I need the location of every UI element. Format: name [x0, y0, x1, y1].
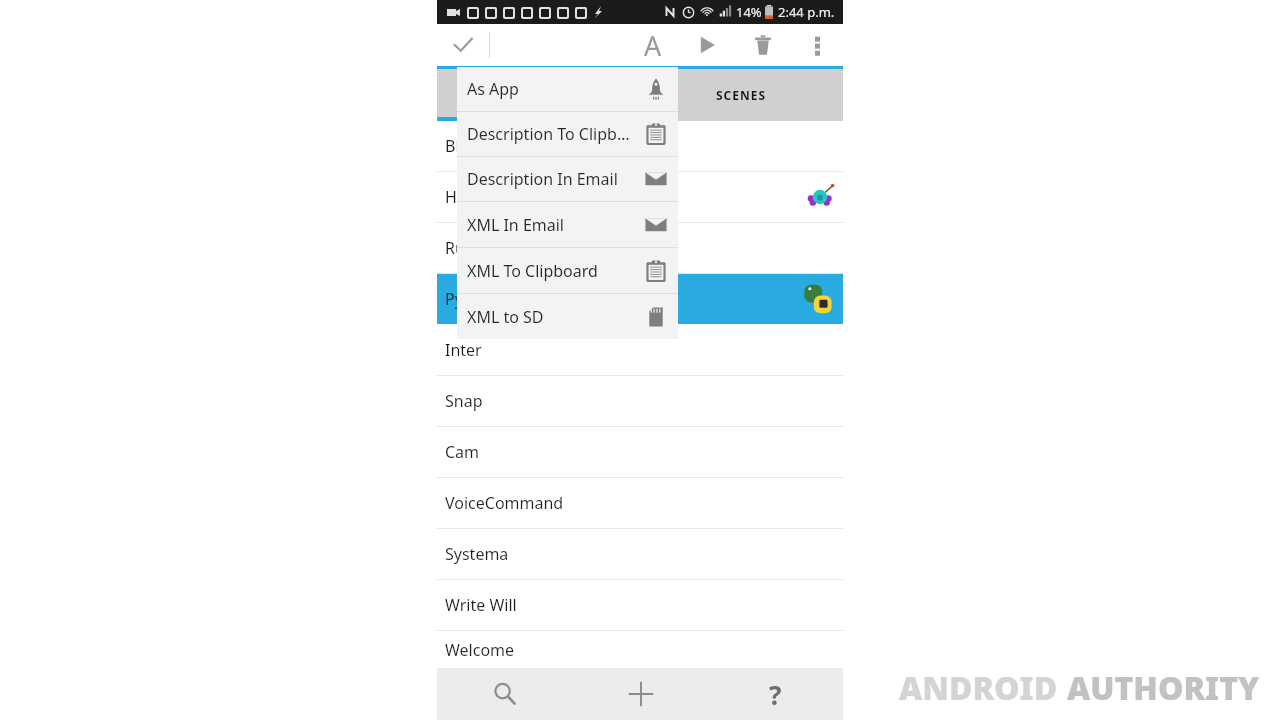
button[interactable]: Home — [437, 172, 843, 222]
staticText: Write Will — [445, 594, 517, 616]
button[interactable]: Bluetooth — [437, 121, 843, 171]
button[interactable]: Add — [573, 668, 708, 720]
button[interactable]: Description In Email — [457, 157, 678, 201]
staticText: ANDROID — [899, 666, 1058, 710]
button[interactable]: SCENES — [640, 69, 843, 121]
button[interactable]: Python — [437, 274, 843, 324]
button[interactable]: XML In Email — [457, 202, 678, 247]
staticText: Cam — [445, 441, 480, 463]
staticText: XML In Email — [467, 214, 638, 236]
button[interactable]: XML To Clipboard — [457, 248, 678, 293]
staticText: Bluetooth — [445, 135, 520, 157]
staticText: Description To Clipb… — [467, 123, 638, 145]
staticText: 14% — [736, 3, 762, 21]
button[interactable]: VoiceCommand — [437, 478, 843, 528]
staticText: A — [644, 27, 662, 64]
staticText: AUTHORITY — [1067, 666, 1260, 710]
staticText: As App — [467, 78, 638, 100]
button[interactable]: TASKS — [437, 69, 640, 121]
staticText: Snap — [445, 390, 483, 412]
button[interactable]: Help — [708, 668, 843, 720]
staticText: 2:44 p.m. — [778, 3, 835, 21]
button[interactable]: Search — [437, 668, 573, 720]
button[interactable]: Run — [679, 24, 735, 66]
button[interactable]: Delete — [735, 24, 791, 66]
button[interactable]: Run — [437, 223, 843, 273]
staticText: VoiceCommand — [445, 492, 564, 514]
button[interactable]: Text style — [627, 24, 679, 66]
staticText: SCENES — [716, 87, 767, 103]
button[interactable]: As App — [457, 67, 678, 111]
staticText: XML to SD — [467, 306, 638, 328]
button[interactable]: Snap — [437, 376, 843, 426]
staticText: Home — [445, 186, 491, 208]
button[interactable]: Inter — [437, 325, 843, 375]
button[interactable]: Cam — [437, 427, 843, 477]
button[interactable]: Description To Clipb… — [457, 112, 678, 156]
staticText: Inter — [445, 339, 482, 361]
staticText: ? — [769, 677, 782, 712]
button[interactable]: Welcome — [437, 631, 843, 668]
button[interactable]: Systema — [437, 529, 843, 579]
button[interactable]: Write Will — [437, 580, 843, 630]
staticText: Run — [445, 237, 475, 259]
button[interactable]: More options — [791, 24, 843, 66]
staticText: Python — [445, 288, 499, 310]
staticText: Welcome — [445, 639, 515, 661]
staticText: XML To Clipboard — [467, 260, 638, 282]
staticText: Description In Email — [467, 168, 638, 190]
button[interactable]: XML to SD — [457, 294, 678, 339]
staticText: Systema — [445, 543, 509, 565]
button[interactable]: Done — [437, 24, 489, 66]
